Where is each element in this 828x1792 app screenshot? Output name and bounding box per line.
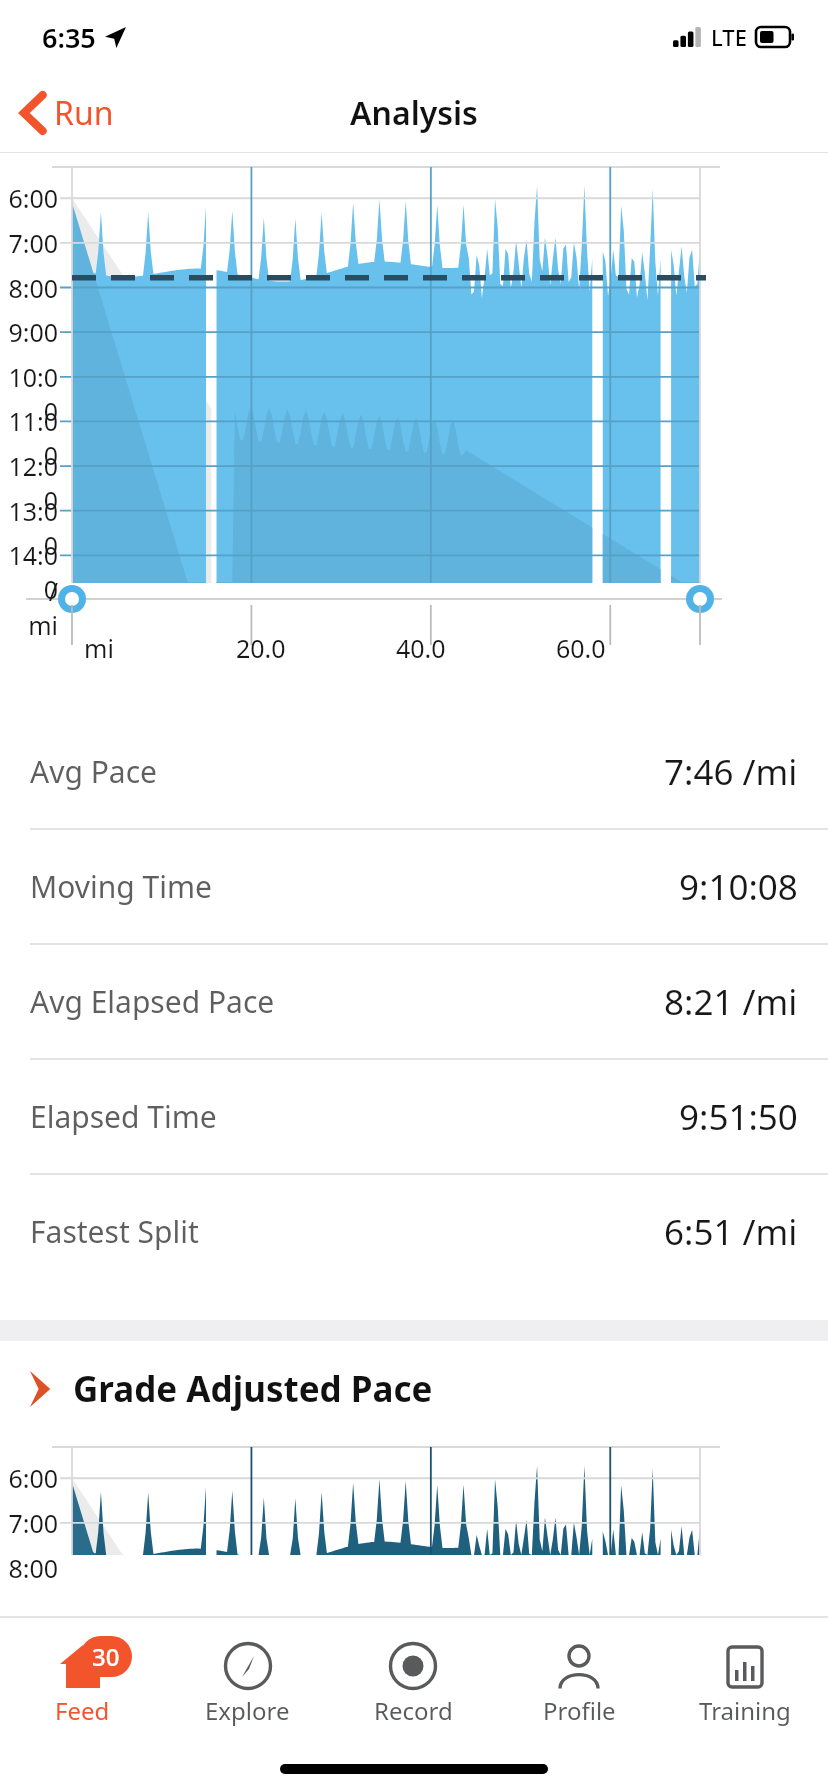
staticText: Avg Elapsed Pace (30, 981, 275, 1022)
staticText: mi (84, 631, 114, 665)
staticText: 6:51 /mi (664, 1208, 798, 1256)
staticText: 11:00 (0, 404, 58, 472)
button[interactable]: Record (330, 1618, 496, 1746)
staticText: Fastest Split (30, 1211, 199, 1252)
staticText: 7:00 (0, 1506, 58, 1540)
staticText: 14:00 (0, 538, 58, 606)
staticText: /mi (26, 574, 58, 642)
staticText: 8:00 (0, 1551, 58, 1585)
button[interactable]: Avg Elapsed Pace (0, 945, 828, 1058)
staticText: 12:00 (0, 449, 58, 517)
staticText: Elapsed Time (30, 1096, 217, 1137)
button[interactable]: Run (0, 81, 132, 145)
staticText: 40.0 (396, 631, 446, 665)
button[interactable]: Feed (0, 1618, 165, 1746)
staticText: Feed (55, 1694, 110, 1727)
staticText: 8:21 /mi (664, 978, 798, 1026)
button[interactable]: Training (662, 1618, 828, 1746)
staticText: Training (699, 1694, 791, 1727)
staticText: 10:00 (0, 360, 58, 428)
staticText: 60.0 (556, 631, 606, 665)
button[interactable]: Elapsed Time (0, 1060, 828, 1173)
staticText: Explore (205, 1694, 290, 1727)
button[interactable]: Avg Pace (0, 715, 828, 828)
button[interactable]: Profile (496, 1618, 662, 1746)
staticText: 9:51:50 (679, 1093, 798, 1141)
staticText: 6:00 (0, 1461, 58, 1495)
staticText: Analysis (350, 91, 478, 135)
staticText: 9:00 (0, 315, 58, 349)
button[interactable]: Explore (165, 1618, 330, 1746)
button[interactable]: Grade Adjusted Pace (0, 1341, 828, 1437)
staticText: 7:46 /mi (664, 748, 798, 796)
staticText: 8:00 (0, 271, 58, 305)
staticText: Grade Adjusted Pace (73, 1365, 433, 1413)
button[interactable]: Fastest Split (0, 1175, 828, 1288)
staticText: Moving Time (30, 866, 212, 907)
staticText: Run (54, 91, 114, 135)
staticText: Record (374, 1694, 453, 1727)
staticText: 13:00 (0, 494, 58, 562)
staticText: 7:00 (0, 226, 58, 260)
staticText: Avg Pace (30, 751, 157, 792)
staticText: 20.0 (236, 631, 286, 665)
staticText: 6:00 (0, 181, 58, 215)
button[interactable]: Moving Time (0, 830, 828, 943)
staticText: 9:10:08 (679, 863, 798, 911)
staticText: 30 (92, 1640, 120, 1673)
staticText: Profile (543, 1694, 616, 1727)
staticText: 6:35 (42, 19, 96, 56)
staticText: LTE (711, 22, 747, 52)
